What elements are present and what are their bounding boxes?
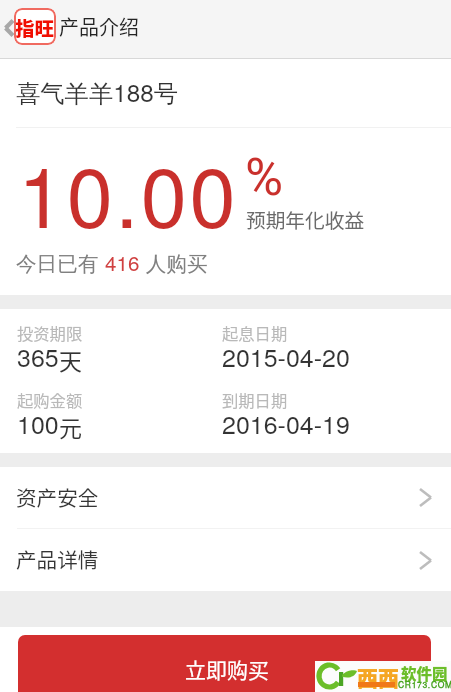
staticText: 产品详情	[16, 544, 99, 574]
staticText: 起息日期	[222, 321, 288, 345]
staticText: 资产安全	[16, 482, 99, 512]
button[interactable]: 资产安全	[0, 467, 451, 528]
staticText: 2016-04-19	[222, 405, 350, 441]
staticText: 100	[17, 405, 59, 441]
staticText: 立即购买	[185, 654, 269, 684]
staticText: 投资期限	[17, 321, 83, 345]
button[interactable]: App logo	[14, 8, 56, 45]
staticText: 天	[59, 343, 82, 376]
staticText: 元	[59, 410, 82, 443]
staticText: 西西	[357, 662, 399, 692]
staticText: CR173.COM	[398, 678, 451, 690]
staticText: 2015-04-20	[222, 338, 350, 374]
button[interactable]: 立即购买	[18, 635, 431, 692]
staticText: 人购买	[140, 247, 208, 277]
button[interactable]: Back	[0, 11, 16, 45]
staticText: 365	[17, 338, 59, 374]
staticText: 起购金额	[17, 388, 83, 412]
staticText: 416	[105, 247, 140, 276]
button[interactable]: 产品详情	[0, 529, 451, 591]
staticText: %	[245, 147, 284, 208]
staticText: 预期年化收益	[246, 205, 365, 234]
staticText: 到期日期	[222, 388, 288, 412]
staticText: 软件园	[401, 662, 448, 684]
staticText: 产品介绍	[59, 12, 139, 41]
staticText: 今日已有	[16, 247, 105, 277]
staticText: 指旺	[15, 13, 55, 41]
staticText: 喜气羊羊188号	[16, 74, 179, 109]
staticText: 10.00	[18, 133, 239, 252]
